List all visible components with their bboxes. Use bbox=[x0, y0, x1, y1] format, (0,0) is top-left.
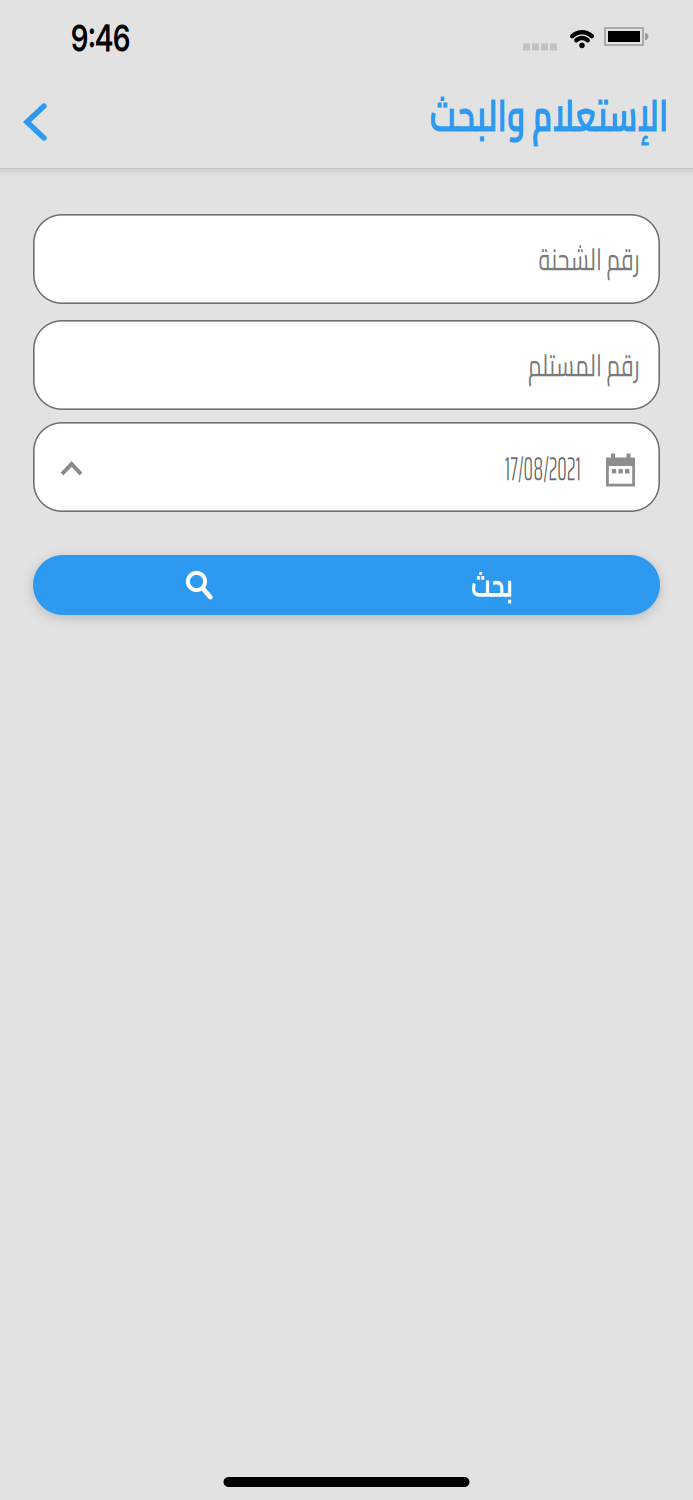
staticText: رقم الشحنة bbox=[495, 230, 639, 288]
staticText: رقم المستلم bbox=[480, 336, 639, 394]
staticText: بحث bbox=[462, 555, 520, 615]
staticText: الإستعلام والبحث bbox=[322, 72, 668, 157]
button[interactable]: Back bbox=[0, 86, 65, 158]
button[interactable]: رقم الشحنة bbox=[33, 214, 660, 304]
staticText: 17/08/2021 bbox=[472, 444, 581, 494]
button[interactable]: Choose date bbox=[33, 422, 660, 512]
button[interactable]: بحث bbox=[33, 555, 660, 615]
staticText: 9:46 bbox=[71, 15, 150, 61]
button[interactable]: رقم المستلم bbox=[33, 320, 660, 410]
